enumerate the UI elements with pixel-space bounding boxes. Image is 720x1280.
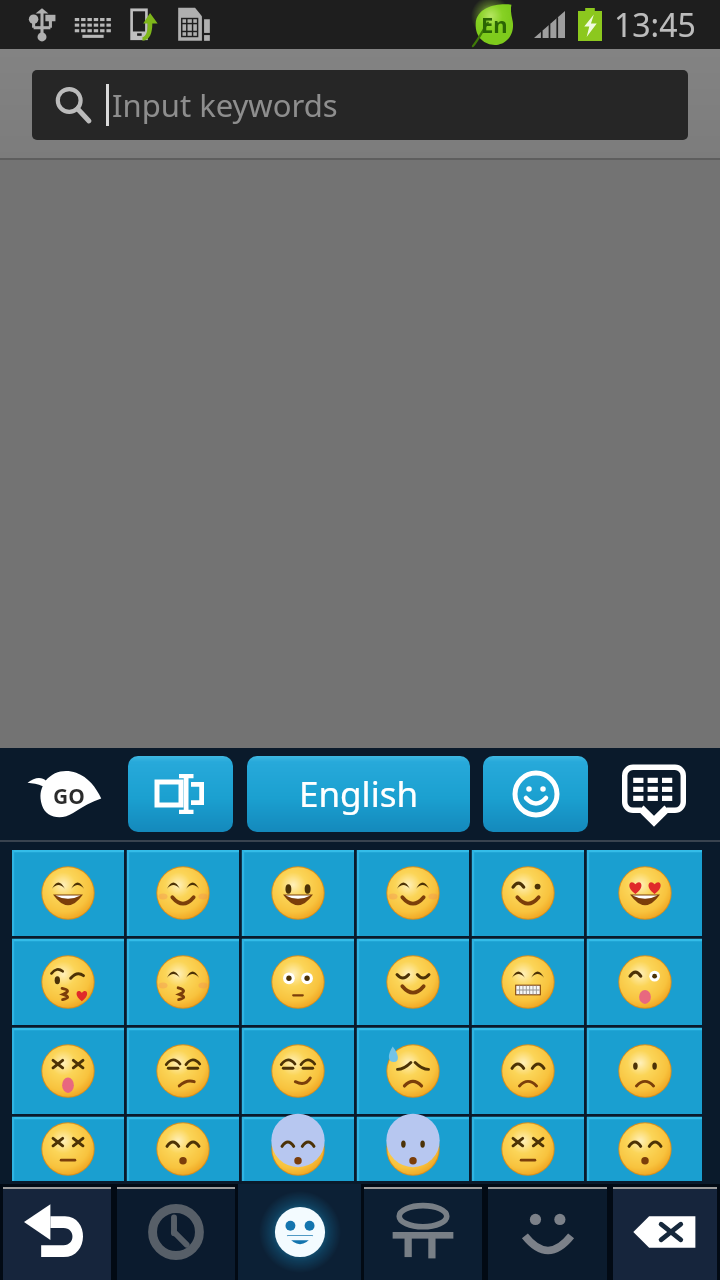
button[interactable]: Korean — [361, 1184, 485, 1280]
button[interactable]: Back — [0, 1184, 114, 1280]
button[interactable]: Emoji — [12, 1117, 124, 1181]
button[interactable]: Recent — [114, 1184, 238, 1280]
button[interactable]: Emoji — [12, 850, 124, 936]
button[interactable]: Emoji — [587, 850, 702, 936]
button[interactable]: Emoji — [472, 850, 584, 936]
button[interactable]: Delete — [610, 1184, 720, 1280]
button[interactable]: Emoji — [587, 1028, 702, 1114]
button[interactable]: Emoji — [238, 1184, 361, 1280]
button[interactable]: Emoji — [357, 939, 469, 1025]
button[interactable]: Emoji — [357, 1117, 469, 1181]
button[interactable]: Emoji — [127, 1117, 239, 1181]
button[interactable]: Emoji — [242, 1028, 354, 1114]
button[interactable]: Emoji — [12, 1028, 124, 1114]
button[interactable]: Emoji — [242, 850, 354, 936]
button[interactable]: Emoji — [242, 939, 354, 1025]
button[interactable]: Emoji — [587, 939, 702, 1025]
staticText: En — [481, 9, 508, 39]
staticText: English — [299, 770, 419, 818]
staticText: GO — [53, 782, 85, 811]
button[interactable]: Emoji — [127, 1028, 239, 1114]
button[interactable]: Emoji — [587, 1117, 702, 1181]
button[interactable]: GO Keyboard — [0, 748, 128, 840]
button[interactable]: Emoji — [483, 756, 588, 832]
button[interactable]: English — [247, 756, 470, 832]
button[interactable]: Hide keyboard — [588, 748, 720, 840]
button[interactable]: Emoji — [472, 939, 584, 1025]
staticText: 13:45 — [614, 3, 696, 47]
button[interactable]: Emoji — [127, 939, 239, 1025]
button[interactable]: Emoji — [357, 1028, 469, 1114]
staticText: Input keywords — [112, 84, 338, 126]
button[interactable]: Emoji — [12, 939, 124, 1025]
button[interactable]: Emoticons — [485, 1184, 610, 1280]
button[interactable]: Emoji — [472, 1117, 584, 1181]
button[interactable]: Switch layout — [128, 756, 233, 832]
button[interactable]: Input keywords — [32, 70, 688, 140]
button[interactable]: Emoji — [242, 1117, 354, 1181]
button[interactable]: Emoji — [127, 850, 239, 936]
button[interactable]: Emoji — [357, 850, 469, 936]
button[interactable]: Emoji — [472, 1028, 584, 1114]
